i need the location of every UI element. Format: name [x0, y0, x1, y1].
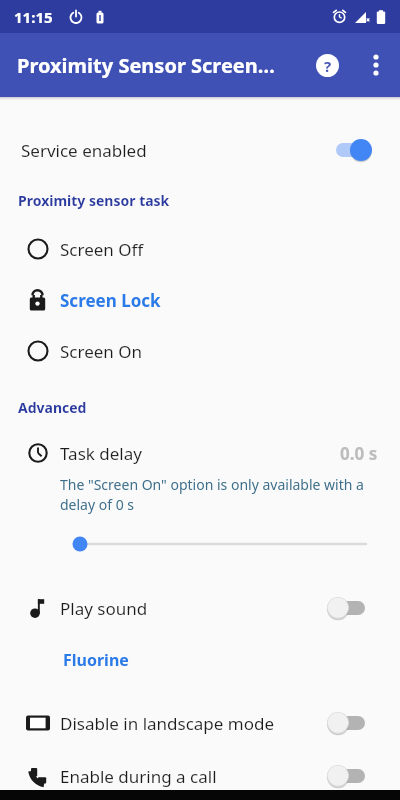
button[interactable] — [327, 138, 372, 162]
staticText: Fluorine — [63, 649, 129, 671]
staticText: Play sound — [60, 597, 148, 620]
staticText: 0.0 s — [340, 442, 378, 465]
button[interactable] — [0, 518, 400, 570]
staticText: The "Screen On" option is only available… — [60, 475, 376, 515]
staticText: Advanced — [18, 398, 87, 417]
button[interactable] — [327, 764, 372, 788]
button[interactable]: Screen On — [0, 324, 400, 378]
staticText: Screen Lock — [60, 289, 161, 312]
button[interactable] — [327, 711, 372, 735]
button[interactable] — [327, 596, 372, 620]
button[interactable]: Fluorine — [0, 638, 400, 682]
button[interactable]: Task delay — [0, 436, 400, 470]
staticText: 11:15 — [14, 7, 53, 27]
staticText: ? — [324, 56, 332, 76]
staticText: Proximity sensor task — [18, 191, 170, 210]
staticText: Disable in landscape mode — [60, 712, 275, 735]
button[interactable]: Play sound — [0, 578, 400, 638]
staticText: Service enabled — [21, 139, 147, 162]
button[interactable] — [358, 47, 394, 83]
staticText: Screen On — [60, 340, 143, 363]
button[interactable]: Screen Lock — [0, 276, 400, 324]
staticText: Screen Off — [60, 238, 144, 261]
staticText: Enable during a call — [60, 765, 217, 788]
button[interactable]: Enable during a call — [0, 752, 400, 800]
button[interactable]: Screen Off — [0, 222, 400, 276]
button[interactable]: Service enabled — [0, 122, 400, 178]
staticText: Proximity Sensor Screen… — [17, 52, 308, 79]
staticText: Task delay — [60, 442, 142, 465]
button[interactable]: ? — [308, 46, 346, 84]
button[interactable]: Disable in landscape mode — [0, 694, 400, 752]
